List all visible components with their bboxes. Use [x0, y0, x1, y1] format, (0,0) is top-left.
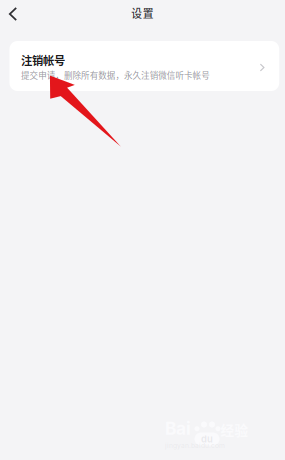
staticText: 提交申请，删除所有数据，永久注销微信听卡帐号 [21, 69, 210, 81]
staticText: jingyan.baidu.com [165, 441, 225, 450]
button[interactable]: 注销帐号 [9, 41, 279, 91]
button[interactable]: 返回 [2, 0, 24, 26]
staticText: 设置 [131, 5, 154, 21]
staticText: 注销帐号 [21, 52, 65, 68]
staticText: du [201, 433, 213, 445]
